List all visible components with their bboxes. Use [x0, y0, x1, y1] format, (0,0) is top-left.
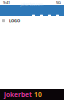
staticText: 10 [34, 90, 42, 99]
staticText: LOGO [9, 18, 20, 23]
staticText: 9:41 [3, 0, 10, 5]
staticText: jokerbet [4, 90, 32, 99]
staticText: 5G [56, 0, 61, 5]
staticText: jokerbet.com [20, 1, 43, 7]
